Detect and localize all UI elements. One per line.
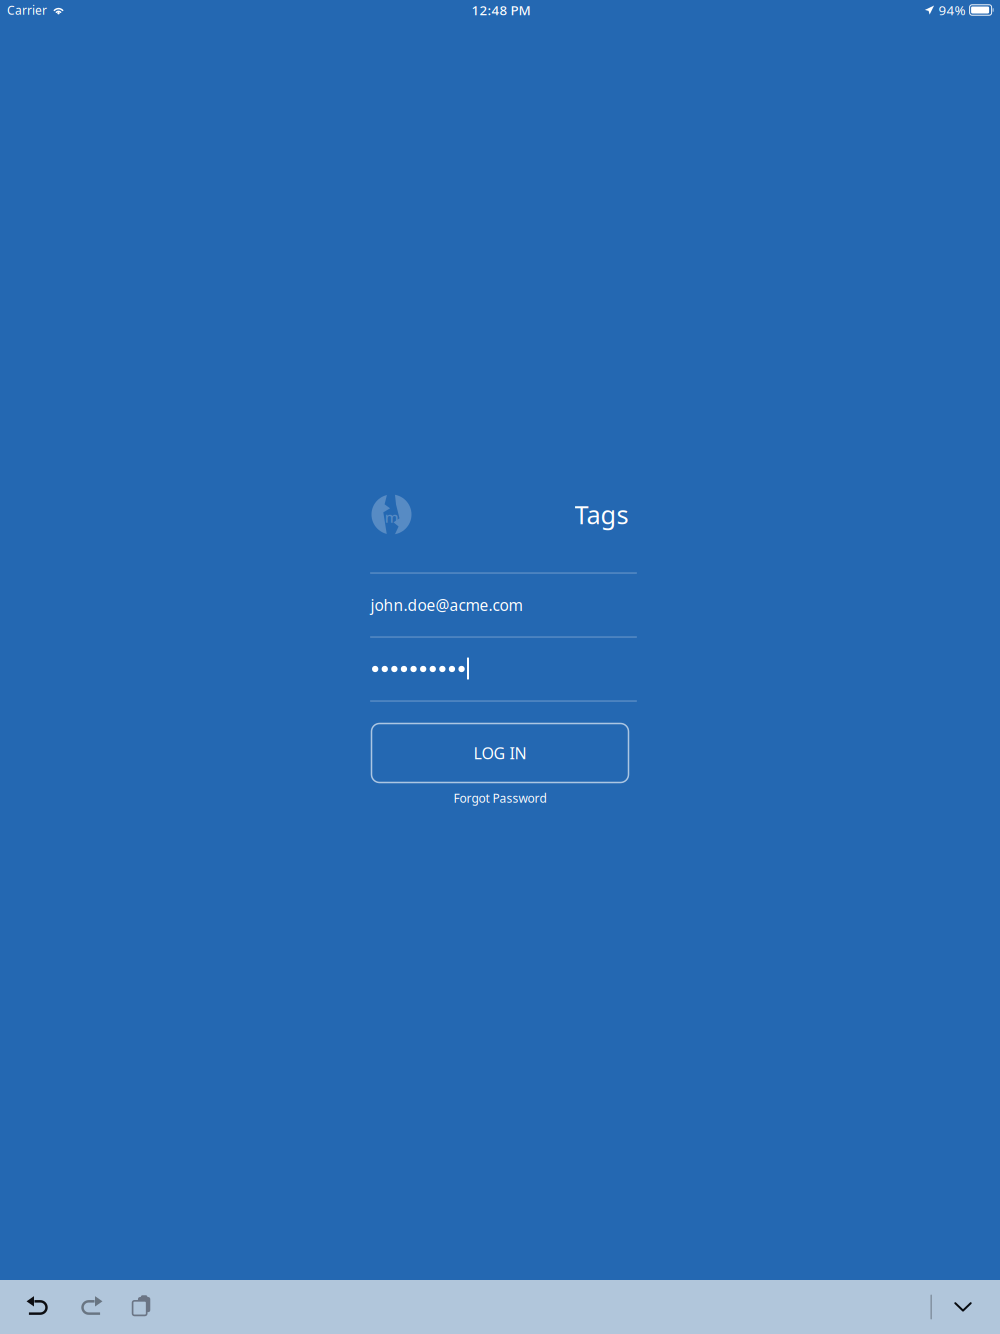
staticText: 12:48 PM bbox=[471, 1, 530, 19]
button[interactable]: Hide keyboard bbox=[932, 1280, 994, 1334]
button[interactable]: john.doe@acme.com bbox=[366, 573, 633, 636]
button[interactable]: Password bbox=[366, 637, 633, 700]
staticText: Carrier bbox=[7, 2, 47, 18]
staticText: john.doe@acme.com bbox=[370, 594, 522, 616]
button[interactable]: Undo bbox=[11, 1280, 65, 1334]
staticText: m bbox=[385, 507, 399, 527]
button[interactable]: Paste bbox=[117, 1280, 169, 1334]
button[interactable]: LOG IN bbox=[371, 723, 628, 782]
button[interactable]: Forgot Password bbox=[371, 782, 628, 813]
staticText: 94% bbox=[938, 1, 965, 19]
staticText: LOG IN bbox=[473, 742, 526, 764]
staticText: Tags bbox=[574, 498, 628, 531]
staticText: Forgot Password bbox=[453, 790, 546, 806]
button[interactable]: Redo bbox=[65, 1280, 117, 1334]
